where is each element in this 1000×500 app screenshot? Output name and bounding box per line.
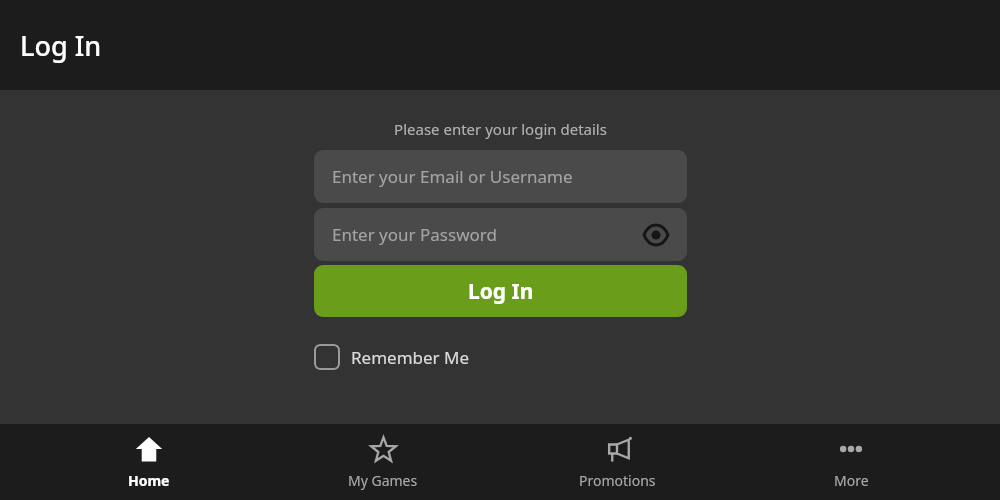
staticText: More — [834, 471, 869, 490]
button[interactable]: Home — [64, 424, 234, 500]
button[interactable]: Enter your Password — [314, 208, 687, 261]
button[interactable]: Show password — [639, 218, 673, 252]
staticText: Home — [128, 471, 170, 490]
button[interactable]: Enter your Email or Username — [314, 150, 687, 203]
staticText: Please enter your login details — [394, 119, 607, 139]
staticText: Enter your Password — [332, 223, 497, 246]
staticText: My Games — [348, 471, 418, 490]
button[interactable]: Log In — [314, 265, 687, 317]
button[interactable]: My Games — [298, 424, 468, 500]
staticText: Log In — [468, 277, 534, 306]
staticText: Remember Me — [351, 346, 470, 369]
staticText: Promotions — [579, 471, 656, 490]
button[interactable]: More — [766, 424, 936, 500]
staticText: Log In — [20, 27, 102, 64]
button[interactable]: Promotions — [532, 424, 702, 500]
button[interactable]: Remember Me — [314, 342, 687, 372]
staticText: Enter your Email or Username — [332, 165, 573, 188]
